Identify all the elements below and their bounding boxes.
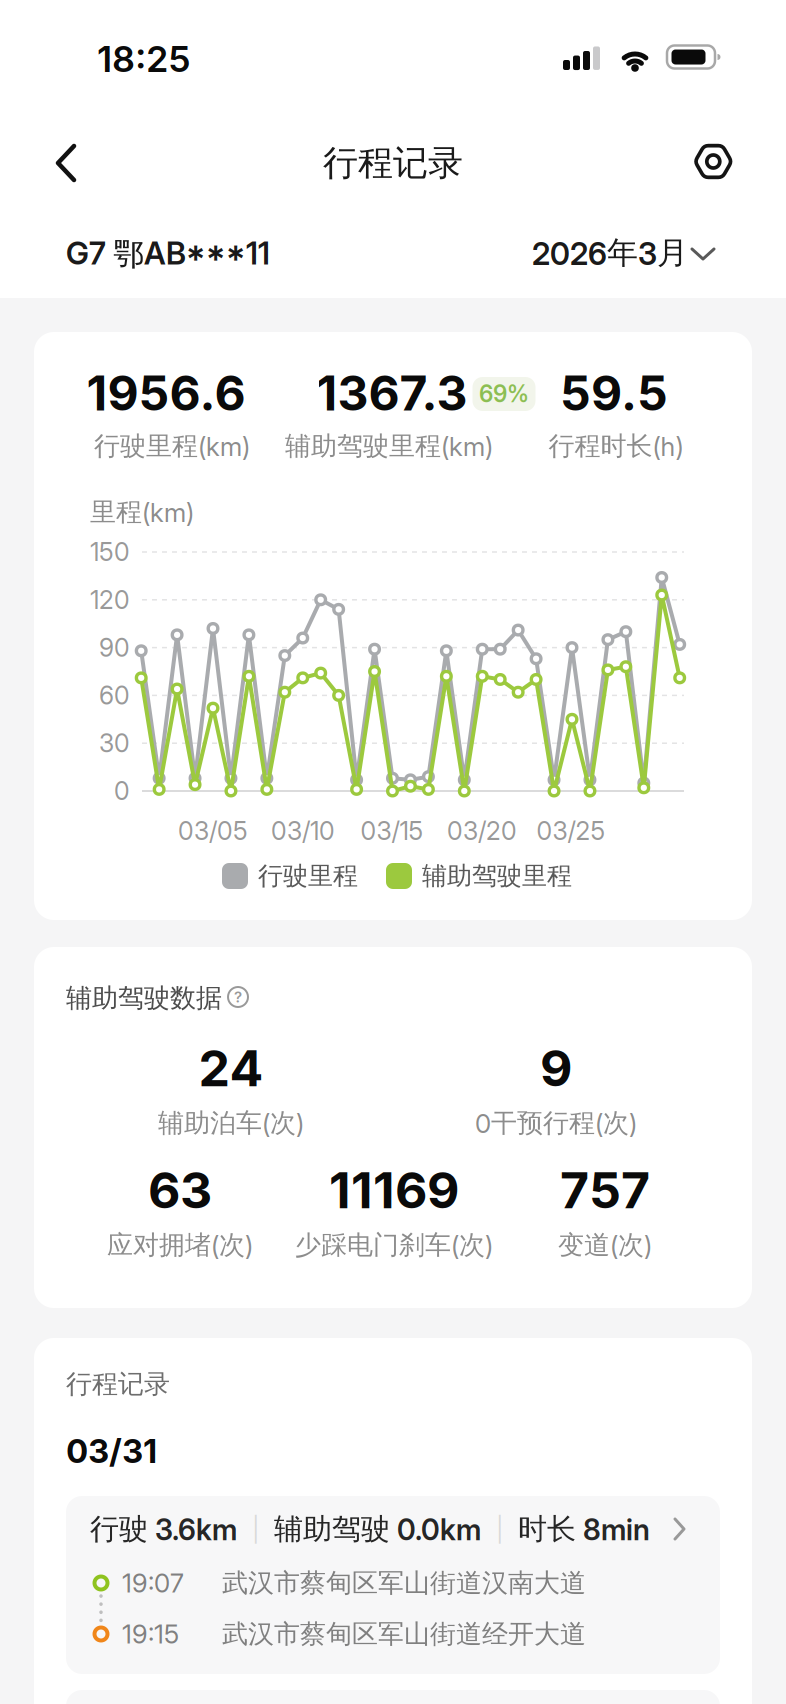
staticText: | bbox=[496, 1515, 503, 1543]
staticText: 24 bbox=[198, 1038, 263, 1097]
staticText: 里程(km) bbox=[90, 496, 194, 528]
staticText: 应对拥堵(次) bbox=[107, 1229, 253, 1261]
staticText: 辅助驾驶里程(km) bbox=[285, 430, 493, 462]
staticText: 69% bbox=[479, 380, 529, 407]
staticText: 变道(次) bbox=[558, 1229, 652, 1261]
staticText: 2026年3月 bbox=[532, 234, 688, 272]
staticText: 辅助驾驶 0.0km bbox=[274, 1511, 481, 1547]
staticText: 行驶 3.6km bbox=[90, 1511, 237, 1547]
staticText: 少踩电门刹车(次) bbox=[295, 1229, 493, 1261]
staticText: 30 bbox=[99, 728, 130, 758]
staticText: 150 bbox=[90, 537, 130, 567]
staticText: 行程记录 bbox=[323, 141, 463, 184]
staticText: 03/10 bbox=[271, 816, 335, 846]
staticText: 90 bbox=[99, 633, 130, 662]
staticText: 18:25 bbox=[97, 38, 191, 80]
staticText: 0 bbox=[114, 776, 130, 806]
staticText: 武汉市蔡甸区军山街道经开大道 bbox=[222, 1618, 586, 1650]
button[interactable]: Settings bbox=[689, 137, 737, 185]
staticText: | bbox=[252, 1515, 259, 1543]
staticText: G7 鄂AB***11 bbox=[66, 235, 270, 273]
staticText: 9 bbox=[540, 1038, 572, 1097]
staticText: 行程记录 bbox=[66, 1368, 170, 1400]
staticText: 辅助驾驶里程 bbox=[422, 861, 572, 891]
button[interactable]: 2026年3月 bbox=[470, 223, 720, 283]
staticText: 120 bbox=[90, 585, 130, 615]
staticText: 03/31 bbox=[66, 1431, 157, 1470]
staticText: 时长 8min bbox=[518, 1511, 650, 1547]
staticText: 03/05 bbox=[178, 816, 248, 846]
staticText: ? bbox=[234, 988, 242, 1006]
staticText: 63 bbox=[148, 1160, 212, 1219]
staticText: 行驶里程 bbox=[258, 861, 358, 891]
button[interactable]: 行驶 3.6km bbox=[66, 1496, 720, 1674]
button[interactable]: 帮助 bbox=[223, 982, 253, 1012]
staticText: 19:07 bbox=[122, 1568, 184, 1598]
staticText: 0干预行程(次) bbox=[475, 1107, 637, 1139]
staticText: 19:15 bbox=[122, 1619, 179, 1649]
staticText: 行驶里程(km) bbox=[94, 430, 250, 462]
staticText: 03/25 bbox=[536, 816, 605, 846]
staticText: 行程时长(h) bbox=[548, 430, 683, 462]
staticText: 1956.6 bbox=[86, 365, 245, 421]
staticText: 03/20 bbox=[447, 816, 517, 846]
staticText: 武汉市蔡甸区军山街道汉南大道 bbox=[222, 1567, 586, 1599]
staticText: 59.5 bbox=[560, 365, 668, 421]
button[interactable]: Back bbox=[44, 141, 88, 185]
staticText: 11169 bbox=[329, 1160, 459, 1219]
staticText: 1367.3 bbox=[316, 365, 467, 421]
staticText: 辅助驾驶数据 bbox=[66, 982, 222, 1014]
staticText: 60 bbox=[99, 681, 130, 710]
staticText: 03/15 bbox=[360, 816, 423, 846]
staticText: 辅助泊车(次) bbox=[158, 1107, 304, 1139]
staticText: 757 bbox=[560, 1160, 650, 1219]
